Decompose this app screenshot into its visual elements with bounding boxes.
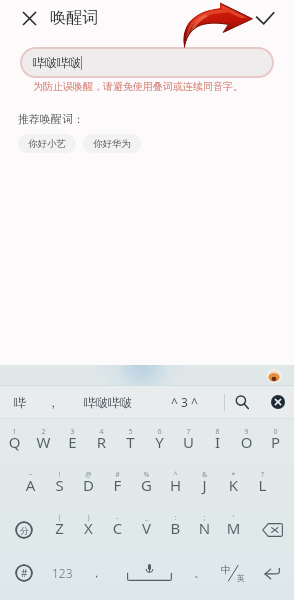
staticText: 英 <box>237 573 245 583</box>
button[interactable]: 5 <box>116 422 145 465</box>
button[interactable]: 8 <box>203 422 232 465</box>
staticText: 哔啵哔啵 <box>33 55 81 70</box>
button[interactable]: ? <box>248 465 277 508</box>
staticText: 4 <box>87 427 116 437</box>
button[interactable]: * <box>219 465 248 508</box>
staticText: 6 <box>145 427 174 437</box>
staticText: Z <box>45 518 74 538</box>
staticText: 7 <box>174 427 203 437</box>
staticText: ! <box>45 470 74 480</box>
button[interactable]: Syllable separator <box>5 508 42 551</box>
button[interactable]: Search <box>227 386 257 418</box>
staticText: R <box>87 432 116 452</box>
button[interactable]: @ <box>74 465 103 508</box>
staticText: 你好华为 <box>93 138 131 150</box>
staticText: G <box>132 475 161 495</box>
staticText: ， <box>91 566 102 580</box>
button[interactable]: : <box>161 508 190 551</box>
button[interactable]: Close <box>15 4 44 33</box>
staticText: E <box>58 432 87 452</box>
button[interactable]: 4 <box>87 422 116 465</box>
staticText: 哔啵哔啵 <box>84 395 132 410</box>
button[interactable]: Hide keyboard <box>263 386 293 418</box>
button[interactable]: - <box>103 508 132 551</box>
button[interactable]: Input method logo <box>267 369 281 383</box>
staticText: 3 <box>58 427 87 437</box>
button[interactable]: ’ <box>219 508 248 551</box>
button[interactable]: ! <box>45 465 74 508</box>
staticText: 分 <box>20 525 29 536</box>
button[interactable]: ( <box>45 508 74 551</box>
staticText: W <box>29 432 58 452</box>
staticText: ; <box>190 513 219 523</box>
button[interactable]: _ <box>132 508 161 551</box>
button[interactable]: ， <box>42 386 64 418</box>
staticText: N <box>190 518 219 538</box>
staticText: 5 <box>116 427 145 437</box>
button[interactable]: Confirm <box>250 3 281 34</box>
staticText: ( <box>45 513 74 523</box>
button[interactable]: Switch Chinese English <box>217 551 249 594</box>
staticText: P <box>261 432 290 452</box>
button[interactable]: Enter <box>252 551 290 594</box>
staticText: J <box>190 475 219 495</box>
staticText: _ <box>132 513 161 523</box>
staticText: K <box>219 475 248 495</box>
staticText: U <box>174 432 203 452</box>
staticText: X <box>74 518 103 538</box>
button[interactable]: 9 <box>232 422 261 465</box>
button[interactable]: 3 <box>58 422 87 465</box>
button[interactable]: 你好小艺 <box>18 134 76 153</box>
staticText: # <box>21 566 28 580</box>
button[interactable]: Backspace <box>253 508 291 551</box>
button[interactable]: Space <box>116 551 182 594</box>
button[interactable]: # <box>103 465 132 508</box>
staticText: % <box>132 470 161 480</box>
staticText: Q <box>0 432 29 452</box>
button[interactable]: ~ <box>16 465 45 508</box>
button[interactable]: 哔啵哔啵 <box>20 47 274 78</box>
staticText: 为防止误唤醒，请避免使用叠词或连续同音字。 <box>33 80 243 93</box>
staticText: 中 <box>221 563 231 576</box>
button[interactable]: 7 <box>174 422 203 465</box>
staticText: ^ <box>161 470 190 480</box>
staticText: 哔 <box>14 395 26 410</box>
staticText: B <box>161 518 190 538</box>
staticText: 123 <box>52 565 73 581</box>
staticText: O <box>232 432 261 452</box>
button[interactable]: 1 <box>0 422 29 465</box>
button[interactable]: 123 <box>45 551 79 594</box>
button[interactable]: ^ 3 ^ <box>160 386 209 418</box>
button[interactable]: % <box>132 465 161 508</box>
staticText: : <box>161 513 190 523</box>
staticText: Y <box>145 432 174 452</box>
button[interactable]: ， <box>82 551 110 594</box>
staticText: ， <box>47 395 59 410</box>
staticText: * <box>219 470 248 480</box>
button[interactable]: 2 <box>29 422 58 465</box>
staticText: F <box>103 475 132 495</box>
staticText: 推荐唤醒词： <box>18 112 84 126</box>
staticText: L <box>248 475 277 495</box>
button[interactable]: 你好华为 <box>83 134 141 153</box>
staticText: ’ <box>219 513 248 523</box>
button[interactable]: 哔 <box>8 386 31 418</box>
staticText: & <box>190 470 219 480</box>
button[interactable]: 哔啵哔啵 <box>79 386 137 418</box>
button[interactable]: Symbols <box>5 551 42 594</box>
staticText: C <box>103 518 132 538</box>
button[interactable]: 。 <box>186 551 213 594</box>
staticText: I <box>203 432 232 452</box>
button[interactable]: & <box>190 465 219 508</box>
staticText: S <box>45 475 74 495</box>
staticText: 。 <box>194 566 205 580</box>
button[interactable]: ; <box>190 508 219 551</box>
button[interactable]: 0 <box>261 422 290 465</box>
staticText: T <box>116 432 145 452</box>
button[interactable]: 6 <box>145 422 174 465</box>
staticText: ) <box>74 513 103 523</box>
button[interactable]: ^ <box>161 465 190 508</box>
button[interactable]: ) <box>74 508 103 551</box>
staticText: D <box>74 475 103 495</box>
staticText: 唤醒词 <box>50 8 98 28</box>
